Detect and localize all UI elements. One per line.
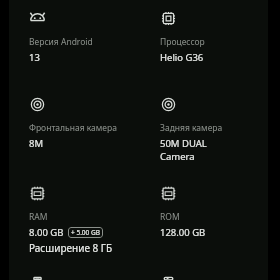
button[interactable]: Front camera [29,94,147,150]
button[interactable]: Processor [160,8,268,64]
staticText: + 5.00 GB [71,228,100,237]
staticText: 8M [29,137,44,150]
button[interactable]: Rear camera [160,94,268,163]
staticText: Версия Android [29,36,93,48]
staticText: Задняя камера [160,122,223,134]
staticText: 50M DUAL [160,137,207,150]
staticText: Camera [160,150,195,163]
button[interactable]: RAM [29,183,147,255]
button[interactable]: Battery [29,277,147,280]
staticText: Helio G36 [160,51,204,64]
other: Battery [29,277,46,280]
staticText: RAM [29,211,48,223]
staticText: Фронтальная камера [29,122,117,134]
staticText: 13 [29,51,40,64]
other: ROM [160,185,177,202]
staticText: ROM [160,211,180,223]
staticText: 8.00 GB [29,226,64,239]
button[interactable]: Display [160,277,268,280]
button[interactable]: ROM [160,183,268,239]
other: Processor [160,10,177,27]
other: Android version [29,10,46,27]
other: Rear camera [160,96,177,113]
staticText: 128.00 GB [160,226,206,239]
other: Front camera [29,96,46,113]
other: Display [160,277,177,280]
staticText: Расширение 8 ГБ [29,241,113,255]
other: RAM [29,185,46,202]
button[interactable]: Android version [29,8,147,64]
staticText: Процессор [160,36,205,48]
